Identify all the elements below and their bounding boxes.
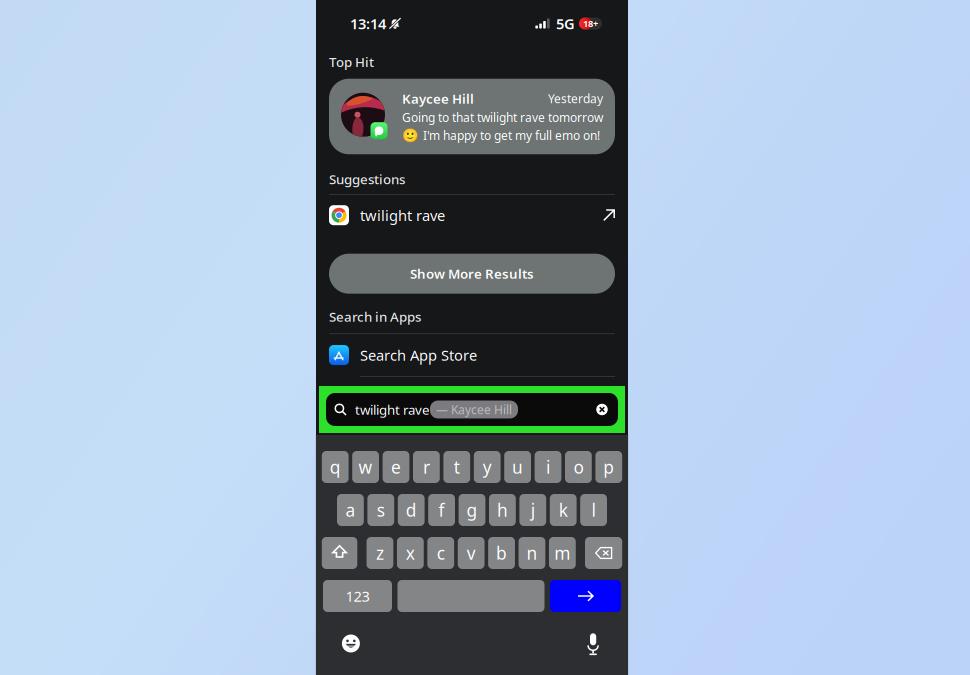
- button[interactable]: Clear search: [591, 398, 613, 420]
- staticText: o: [573, 455, 583, 478]
- staticText: Yesterday: [548, 91, 603, 106]
- button[interactable]: l: [580, 494, 607, 526]
- button[interactable]: v: [458, 537, 485, 569]
- staticText: Suggestions: [329, 170, 405, 188]
- staticText: twilight rave: [360, 205, 445, 225]
- staticText: f: [439, 498, 445, 521]
- button[interactable]: x: [397, 537, 424, 569]
- button[interactable]: c: [427, 537, 454, 569]
- button[interactable]: g: [459, 494, 485, 526]
- staticText: j: [531, 498, 535, 521]
- staticText: Show More Results: [410, 265, 534, 282]
- staticText: i: [546, 455, 550, 478]
- button[interactable]: Search App Store: [329, 334, 615, 376]
- button[interactable]: z: [367, 537, 393, 569]
- staticText: Search App Store: [360, 345, 477, 365]
- button[interactable]: 123: [323, 580, 392, 612]
- staticText: 18+: [583, 17, 598, 30]
- staticText: s: [377, 498, 385, 521]
- button[interactable]: q: [322, 451, 349, 483]
- staticText: l: [592, 498, 596, 521]
- button[interactable]: space: [397, 580, 544, 612]
- staticText: t: [454, 455, 460, 478]
- button[interactable]: k: [550, 494, 577, 526]
- staticText: c: [437, 541, 445, 564]
- button[interactable]: o: [565, 451, 592, 483]
- staticText: d: [406, 498, 417, 521]
- button[interactable]: s: [367, 494, 394, 526]
- staticText: x: [406, 541, 415, 564]
- button[interactable]: m: [549, 537, 576, 569]
- button[interactable]: h: [489, 494, 516, 526]
- staticText: Top Hit: [329, 53, 374, 71]
- button[interactable]: Emoji: [334, 626, 368, 660]
- button[interactable]: n: [518, 537, 545, 569]
- button[interactable]: Delete: [585, 537, 622, 569]
- button[interactable]: i: [535, 451, 561, 483]
- staticText: b: [496, 541, 507, 564]
- staticText: Search in Apps: [329, 308, 421, 325]
- button[interactable]: y: [474, 451, 501, 483]
- button[interactable]: Kaycee Hill: [329, 79, 615, 154]
- button[interactable]: d: [398, 494, 425, 526]
- staticText: h: [497, 498, 508, 521]
- staticText: y: [483, 455, 492, 478]
- staticText: I'm happy to get my full emo on!: [423, 127, 600, 143]
- staticText: twilight rave: [355, 401, 430, 418]
- button[interactable]: j: [519, 494, 546, 526]
- staticText: m: [554, 541, 570, 564]
- button[interactable]: u: [504, 451, 531, 483]
- staticText: n: [526, 541, 537, 564]
- staticText: k: [559, 498, 568, 521]
- staticText: u: [512, 455, 523, 478]
- button[interactable]: Shift: [322, 537, 357, 569]
- staticText: 🙂: [402, 128, 419, 143]
- staticText: Kaycee Hill: [402, 90, 474, 107]
- staticText: a: [345, 498, 355, 521]
- button[interactable]: t: [443, 451, 470, 483]
- button[interactable]: b: [488, 537, 515, 569]
- staticText: 123: [345, 586, 369, 606]
- button[interactable]: Show More Results: [329, 254, 615, 294]
- button[interactable]: e: [383, 451, 409, 483]
- staticText: q: [330, 455, 341, 478]
- staticText: p: [603, 455, 614, 478]
- button[interactable]: w: [352, 451, 379, 483]
- button[interactable]: a: [337, 494, 364, 526]
- button[interactable]: p: [595, 451, 622, 483]
- staticText: z: [376, 541, 384, 564]
- button[interactable]: r: [413, 451, 440, 483]
- button[interactable]: twilight rave: [329, 195, 615, 236]
- button[interactable]: f: [428, 494, 455, 526]
- staticText: Going to that twilight rave tomorrow: [402, 109, 603, 125]
- staticText: w: [359, 455, 373, 478]
- button[interactable]: Dictate: [576, 626, 610, 660]
- staticText: — Kaycee Hill: [436, 401, 512, 417]
- staticText: g: [466, 498, 477, 521]
- button[interactable]: Search: [550, 580, 621, 612]
- staticText: 5G: [556, 14, 575, 33]
- staticText: r: [423, 455, 430, 478]
- staticText: 13:14: [350, 14, 386, 33]
- staticText: e: [391, 455, 401, 478]
- staticText: v: [467, 541, 476, 564]
